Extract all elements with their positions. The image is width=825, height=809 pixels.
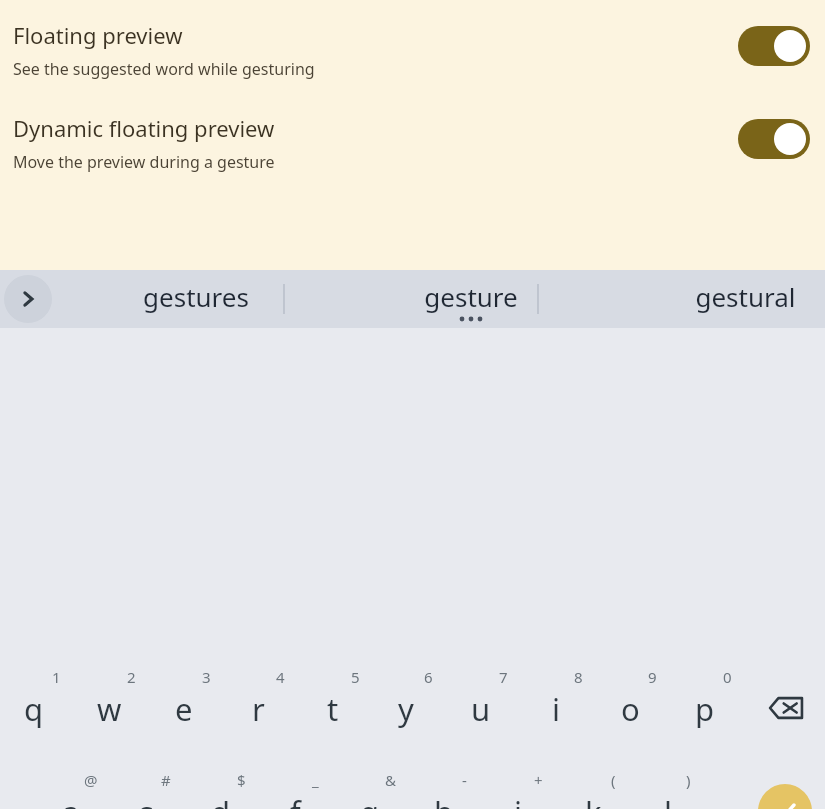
button[interactable]: Dynamic floating preview bbox=[0, 113, 825, 191]
staticText: @ bbox=[84, 770, 98, 790]
button[interactable]: gestural bbox=[608, 270, 825, 328]
button[interactable]: f bbox=[258, 778, 332, 809]
staticText: See the suggested word while gesturing bbox=[13, 58, 315, 80]
staticText: d bbox=[211, 791, 231, 809]
button[interactable]: y bbox=[369, 675, 443, 743]
button[interactable]: Dynamic floating preview bbox=[738, 119, 810, 159]
staticText: t bbox=[327, 688, 339, 730]
staticText: h bbox=[434, 791, 454, 809]
staticText: 3 bbox=[202, 667, 211, 687]
staticText: gesture bbox=[424, 279, 518, 314]
staticText: _ bbox=[312, 770, 319, 790]
button[interactable]: w bbox=[72, 675, 146, 743]
staticText: f bbox=[290, 791, 301, 809]
button[interactable]: e bbox=[147, 675, 221, 743]
button[interactable]: r bbox=[221, 675, 295, 743]
staticText: e bbox=[175, 688, 193, 730]
staticText: s bbox=[139, 791, 154, 809]
button[interactable]: q bbox=[0, 675, 71, 743]
button[interactable]: Floating preview bbox=[0, 20, 825, 98]
button[interactable]: gestures bbox=[58, 270, 333, 328]
staticText: $ bbox=[237, 770, 246, 790]
button[interactable]: Floating preview bbox=[738, 26, 810, 66]
staticText: a bbox=[62, 791, 80, 809]
staticText: u bbox=[471, 688, 491, 730]
button[interactable]: k bbox=[556, 778, 630, 809]
button[interactable]: o bbox=[593, 675, 667, 743]
staticText: & bbox=[385, 770, 396, 790]
staticText: gestural bbox=[695, 279, 796, 314]
staticText: ) bbox=[686, 770, 691, 790]
button[interactable]: j bbox=[481, 778, 555, 809]
button[interactable]: i bbox=[519, 675, 593, 743]
staticText: g bbox=[360, 791, 380, 809]
staticText: 7 bbox=[499, 667, 508, 687]
staticText: Move the preview during a gesture bbox=[13, 151, 275, 173]
staticText: 2 bbox=[127, 667, 136, 687]
button[interactable]: gesture bbox=[333, 270, 608, 328]
button[interactable]: p bbox=[668, 675, 742, 743]
staticText: 4 bbox=[276, 667, 285, 687]
staticText: q bbox=[24, 688, 44, 730]
button[interactable]: l bbox=[631, 778, 705, 809]
staticText: Dynamic floating preview bbox=[13, 113, 275, 143]
staticText: 9 bbox=[648, 667, 657, 687]
staticText: l bbox=[664, 791, 672, 809]
staticText: 5 bbox=[351, 667, 360, 687]
button[interactable]: s bbox=[109, 778, 183, 809]
staticText: o bbox=[621, 688, 640, 730]
staticText: i bbox=[552, 688, 560, 730]
staticText: r bbox=[252, 688, 265, 730]
staticText: j bbox=[514, 791, 522, 809]
button[interactable]: t bbox=[296, 675, 370, 743]
staticText: 0 bbox=[723, 667, 732, 687]
staticText: gestures bbox=[143, 279, 249, 314]
button[interactable]: Expand suggestions bbox=[4, 275, 52, 323]
button[interactable]: u bbox=[444, 675, 518, 743]
button[interactable]: d bbox=[184, 778, 258, 809]
staticText: + bbox=[534, 770, 543, 790]
button[interactable]: g bbox=[333, 778, 407, 809]
button[interactable]: Backspace bbox=[752, 678, 820, 738]
staticText: 6 bbox=[424, 667, 433, 687]
button[interactable]: Enter bbox=[758, 784, 812, 809]
staticText: 8 bbox=[574, 667, 583, 687]
staticText: k bbox=[585, 791, 602, 809]
staticText: 1 bbox=[52, 667, 61, 687]
button[interactable]: a bbox=[34, 778, 108, 809]
staticText: # bbox=[161, 770, 171, 790]
staticText: p bbox=[695, 688, 715, 730]
staticText: y bbox=[398, 688, 414, 730]
button[interactable]: h bbox=[407, 778, 481, 809]
staticText: - bbox=[462, 770, 467, 790]
staticText: ( bbox=[611, 770, 616, 790]
staticText: w bbox=[97, 688, 122, 730]
staticText: Floating preview bbox=[13, 20, 183, 50]
